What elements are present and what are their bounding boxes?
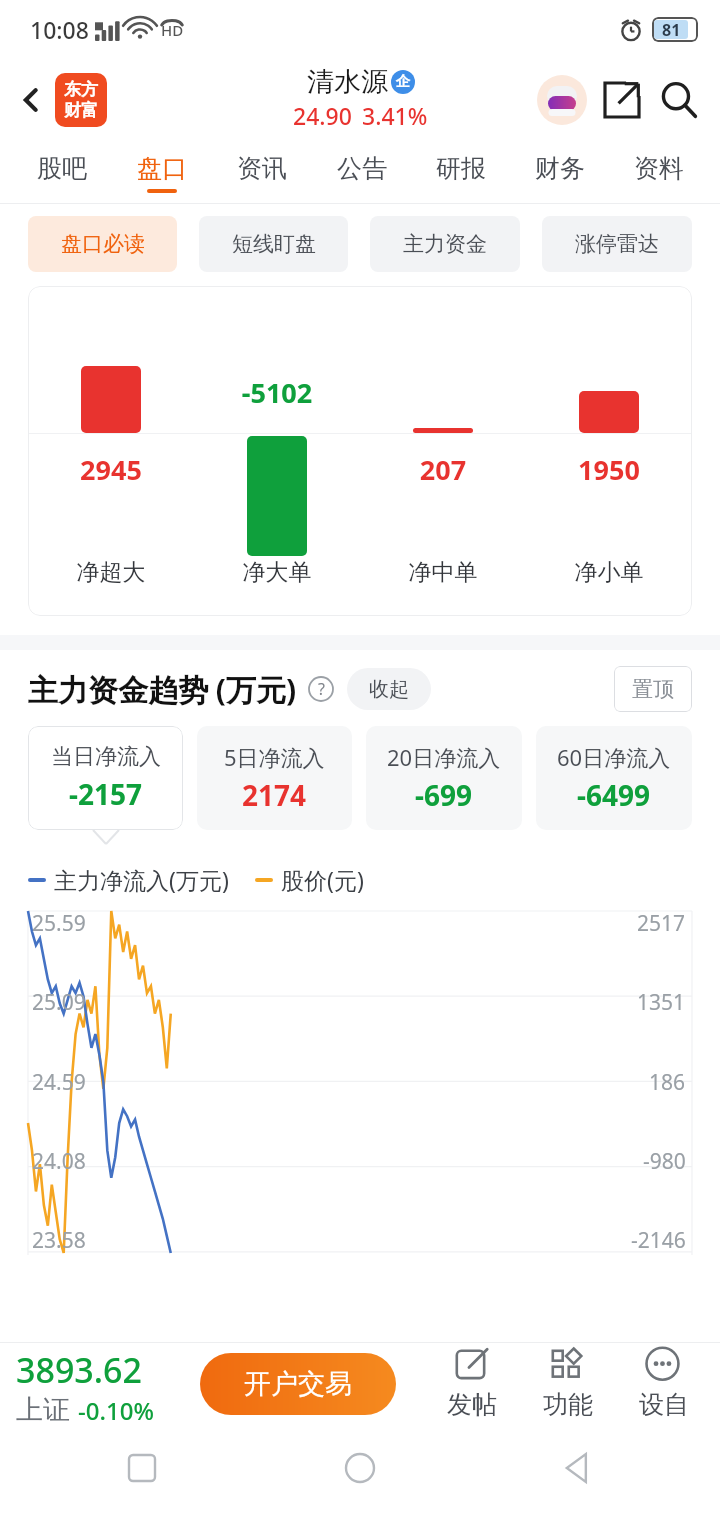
staticText: -0.10% (78, 1394, 154, 1427)
staticText: 涨停雷达 (575, 231, 659, 257)
staticText: 60日净流入 (557, 742, 671, 772)
staticText: 186 (649, 1068, 686, 1097)
button[interactable]: 盘口 (112, 142, 212, 204)
staticText: 资料 (634, 153, 684, 184)
staticText: -5102 (194, 374, 360, 411)
staticText: HD (161, 20, 184, 40)
staticText: 24.90 (293, 100, 352, 131)
button[interactable]: Back (556, 1446, 600, 1490)
staticText: -6499 (577, 776, 651, 814)
button[interactable]: Share (596, 74, 648, 126)
staticText: 10:08 (30, 14, 89, 45)
staticText: -699 (415, 776, 473, 814)
staticText: 5日净流入 (224, 742, 325, 772)
button[interactable]: Help (307, 675, 335, 703)
button[interactable]: 收起 (347, 668, 431, 710)
staticText: 财富 (64, 100, 98, 121)
button[interactable]: Functions (520, 1347, 616, 1420)
staticText: -980 (643, 1147, 686, 1176)
staticText: -2157 (69, 775, 143, 813)
staticText: 207 (360, 451, 526, 488)
button[interactable]: 资料 (609, 142, 708, 204)
button[interactable]: 财务 (510, 142, 609, 204)
button[interactable]: 股吧 (12, 142, 112, 204)
button[interactable]: Search (652, 73, 706, 127)
staticText: 24.59 (32, 1068, 86, 1097)
staticText: 功能 (543, 1389, 593, 1420)
staticText: 1950 (526, 451, 692, 488)
staticText: 企 (396, 73, 410, 91)
button[interactable]: 盘口必读 (28, 216, 177, 272)
staticText: 23.58 (32, 1226, 86, 1255)
button[interactable]: 涨停雷达 (542, 216, 692, 272)
button[interactable]: 置顶 (614, 666, 692, 712)
button[interactable]: Home (338, 1446, 382, 1490)
button[interactable]: 资讯 (212, 142, 312, 204)
staticText: 主力净流入(万元) (54, 864, 229, 895)
staticText: ? (318, 678, 325, 700)
staticText: 置顶 (632, 676, 674, 702)
button[interactable]: 主力资金 (370, 216, 520, 272)
button[interactable]: Assistant (536, 74, 588, 126)
staticText: 东方 (64, 79, 98, 100)
staticText: 发帖 (447, 1389, 497, 1420)
staticText: 上证 (16, 1393, 70, 1427)
button[interactable]: 5日净流入 (197, 726, 352, 830)
button[interactable]: 开户交易 (200, 1353, 396, 1415)
staticText: 收起 (369, 677, 409, 702)
staticText: 资讯 (237, 153, 287, 184)
staticText: 25.09 (32, 988, 86, 1017)
button[interactable]: More (616, 1347, 712, 1420)
staticText: 主力资金 (403, 231, 487, 257)
button[interactable]: 60日净流入 (536, 726, 692, 830)
staticText: 25.59 (32, 909, 86, 938)
staticText: 净小单 (526, 558, 692, 587)
staticText: 20日净流入 (387, 742, 501, 772)
staticText: 盘口必读 (61, 231, 145, 257)
button[interactable]: 短线盯盘 (199, 216, 348, 272)
staticText: 2517 (637, 909, 686, 938)
staticText: 设自 (639, 1389, 689, 1420)
staticText: 3.41% (362, 100, 428, 131)
button[interactable]: East Money (55, 73, 107, 127)
staticText: -2146 (631, 1226, 686, 1255)
button[interactable]: 公告 (312, 142, 411, 204)
staticText: 公告 (337, 153, 387, 184)
staticText: 净中单 (360, 558, 526, 587)
staticText: 开户交易 (244, 1367, 352, 1401)
button[interactable]: Recents (120, 1446, 164, 1490)
staticText: 2174 (242, 776, 307, 814)
staticText: 清水源 (307, 65, 388, 99)
staticText: 3893.62 (16, 1347, 142, 1393)
staticText: 净大单 (194, 558, 360, 587)
staticText: 净超大 (28, 558, 194, 587)
staticText: 主力资金趋势 (万元) (28, 669, 297, 710)
staticText: 短线盯盘 (232, 231, 316, 257)
staticText: 当日净流入 (51, 743, 161, 771)
staticText: 股吧 (37, 153, 87, 184)
staticText: 81 (662, 19, 681, 41)
staticText: 24.08 (32, 1147, 86, 1176)
button[interactable]: 研报 (411, 142, 510, 204)
staticText: 研报 (436, 153, 486, 184)
staticText: 财务 (535, 153, 585, 184)
button[interactable]: 当日净流入 (28, 726, 183, 830)
button[interactable]: Post (424, 1347, 520, 1420)
staticText: 2945 (28, 451, 194, 488)
button[interactable]: Back (8, 77, 54, 123)
staticText: 股价(元) (281, 864, 364, 895)
staticText: 1351 (637, 988, 686, 1017)
button[interactable]: 20日净流入 (366, 726, 522, 830)
staticText: 盘口 (137, 153, 187, 184)
